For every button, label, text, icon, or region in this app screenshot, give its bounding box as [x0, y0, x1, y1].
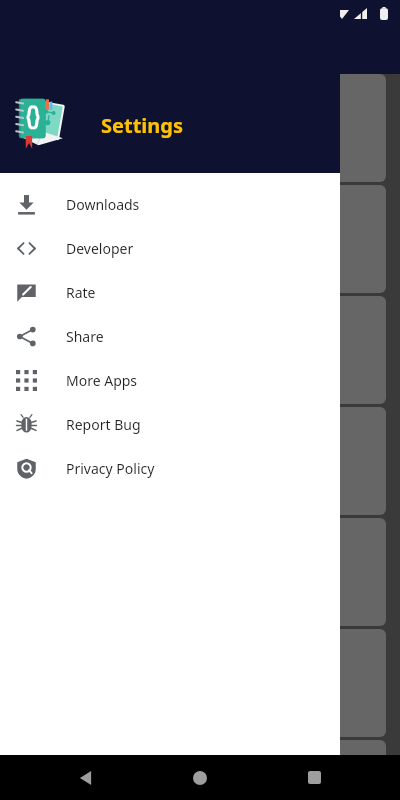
staticText: Developer	[66, 239, 134, 258]
button[interactable]	[332, 629, 386, 737]
staticText: Rate	[66, 283, 96, 302]
button[interactable]: Home	[176, 755, 224, 800]
staticText: More Apps	[66, 371, 138, 390]
button[interactable]: Privacy Policy	[0, 446, 340, 490]
button[interactable]	[332, 407, 386, 515]
staticText: Report Bug	[66, 415, 141, 434]
button[interactable]: Share	[0, 314, 340, 358]
button[interactable]	[332, 185, 386, 293]
staticText: Settings	[101, 112, 183, 139]
button[interactable]: Rate	[0, 270, 340, 314]
button[interactable]	[332, 740, 386, 800]
button[interactable]: Recent apps	[290, 755, 338, 800]
staticText: Share	[66, 327, 104, 346]
button[interactable]: Back	[62, 755, 110, 800]
staticText: Privacy Policy	[66, 459, 155, 478]
button[interactable]	[332, 296, 386, 404]
staticText: Downloads	[66, 195, 140, 214]
button[interactable]	[332, 74, 386, 182]
button[interactable]: Downloads	[0, 182, 340, 226]
button[interactable]	[332, 518, 386, 626]
button[interactable]: More Apps	[0, 358, 340, 402]
button[interactable]: Report Bug	[0, 402, 340, 446]
button[interactable]: Developer	[0, 226, 340, 270]
